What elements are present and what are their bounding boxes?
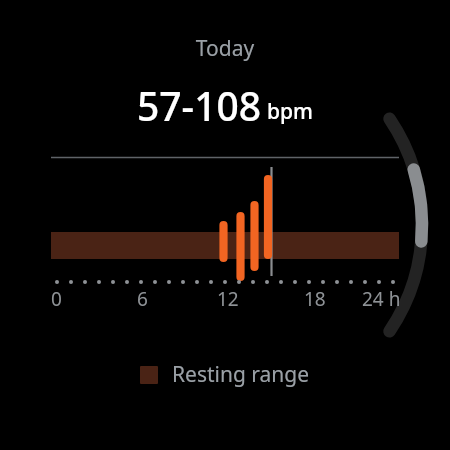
button[interactable]: Resting range [0, 360, 450, 389]
staticText: 12 [217, 286, 239, 312]
staticText: 0 [51, 286, 62, 312]
staticText: 6 [137, 286, 148, 312]
staticText: 18 [304, 286, 326, 312]
button[interactable]: 57-108 [0, 79, 450, 132]
staticText: 57-108 [137, 79, 262, 132]
staticText: Resting range [172, 360, 310, 389]
other: Scroll position indicator [0, 0, 450, 450]
staticText: bpm [267, 97, 313, 126]
button[interactable]: Today [0, 34, 450, 63]
staticText: 24 h [362, 286, 401, 312]
